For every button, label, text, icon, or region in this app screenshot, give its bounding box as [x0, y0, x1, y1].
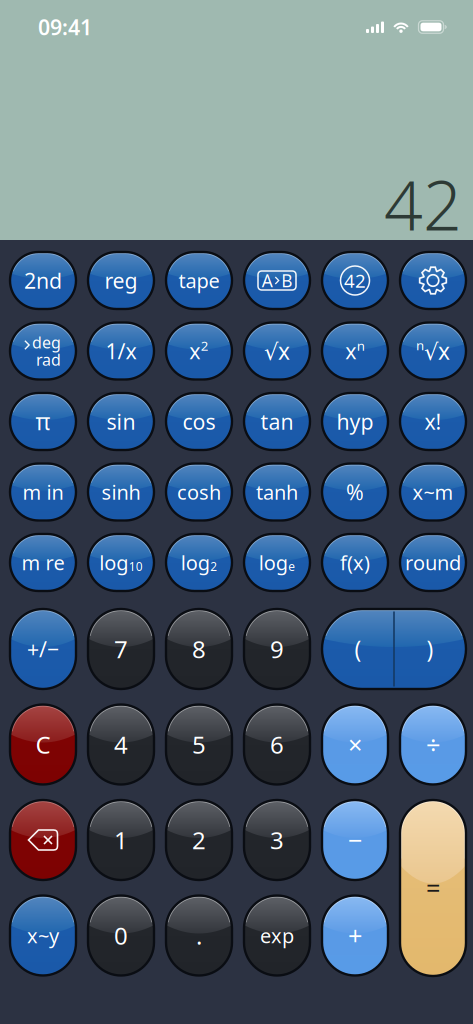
- button[interactable]: −: [322, 800, 388, 880]
- staticText: 6: [270, 729, 284, 760]
- staticText: +/−: [27, 635, 59, 663]
- staticText: cos: [182, 407, 215, 436]
- staticText: 2: [192, 824, 206, 856]
- button[interactable]: x2: [166, 322, 232, 379]
- staticText: 2: [201, 337, 209, 354]
- staticText: 9: [270, 633, 284, 665]
- button[interactable]: 8: [166, 609, 232, 689]
- staticText: (: [354, 634, 361, 664]
- button[interactable]: π: [10, 393, 76, 450]
- staticText: 2nd: [24, 266, 62, 295]
- staticText: B: [281, 269, 292, 292]
- button[interactable]: %: [322, 463, 388, 520]
- button[interactable]: Settings: [400, 252, 466, 309]
- button[interactable]: .: [166, 895, 232, 975]
- button[interactable]: ÷: [400, 704, 466, 784]
- staticText: 2: [210, 558, 217, 574]
- button[interactable]: √x: [244, 322, 310, 379]
- button[interactable]: exp: [244, 895, 310, 975]
- button[interactable]: hyp: [322, 393, 388, 450]
- button[interactable]: 3: [244, 800, 310, 880]
- button[interactable]: 9: [244, 609, 310, 689]
- button[interactable]: 1/x: [88, 322, 154, 379]
- staticText: 8: [192, 633, 206, 665]
- staticText: exp: [260, 922, 294, 949]
- button[interactable]: ×: [322, 704, 388, 784]
- staticText: log: [99, 549, 128, 576]
- button[interactable]: 4: [88, 704, 154, 784]
- button[interactable]: 1: [88, 800, 154, 880]
- button[interactable]: +/−: [10, 609, 76, 689]
- staticText: .: [196, 920, 202, 951]
- button[interactable]: round: [400, 534, 466, 591]
- button[interactable]: 6: [244, 704, 310, 784]
- button[interactable]: cosh: [166, 463, 232, 520]
- staticText: π: [35, 406, 50, 436]
- staticText: x~y: [27, 922, 59, 949]
- staticText: 4: [114, 729, 128, 760]
- staticText: 7: [114, 633, 128, 665]
- staticText: A: [262, 269, 273, 292]
- staticText: +: [348, 919, 362, 952]
- staticText: m in: [22, 479, 63, 505]
- button[interactable]: m re: [10, 534, 76, 591]
- staticText: ): [426, 634, 433, 664]
- button[interactable]: 0: [88, 895, 154, 975]
- button[interactable]: x!: [400, 393, 466, 450]
- button[interactable]: Degrees or radians: [10, 322, 76, 379]
- staticText: 0: [114, 920, 128, 951]
- staticText: 42: [344, 268, 366, 293]
- staticText: e: [288, 558, 295, 574]
- staticText: tan: [260, 407, 293, 436]
- button[interactable]: tanh: [244, 463, 310, 520]
- button[interactable]: x~m: [400, 463, 466, 520]
- staticText: ÷: [426, 728, 440, 761]
- button[interactable]: =: [400, 800, 466, 976]
- button[interactable]: Answer 42: [322, 252, 388, 309]
- staticText: 1/x: [105, 337, 136, 365]
- button[interactable]: 2: [166, 800, 232, 880]
- button[interactable]: cos: [166, 393, 232, 450]
- button[interactable]: 5: [166, 704, 232, 784]
- staticText: reg: [104, 266, 137, 295]
- button[interactable]: C: [10, 704, 76, 784]
- button[interactable]: sinh: [88, 463, 154, 520]
- staticText: =: [426, 871, 440, 905]
- staticText: −: [348, 823, 362, 857]
- staticText: x~m: [412, 479, 453, 505]
- staticText: deg: [32, 332, 61, 353]
- button[interactable]: nth root of x: [400, 322, 466, 379]
- button[interactable]: tan: [244, 393, 310, 450]
- staticText: n: [416, 336, 424, 354]
- button[interactable]: m in: [10, 463, 76, 520]
- button[interactable]: x~y: [10, 895, 76, 975]
- staticText: C: [35, 729, 50, 760]
- staticText: m re: [21, 549, 64, 576]
- button[interactable]: reg: [88, 252, 154, 309]
- staticText: x: [345, 337, 356, 365]
- button[interactable]: 2nd: [10, 252, 76, 309]
- button[interactable]: loge: [244, 534, 310, 591]
- staticText: 3: [270, 824, 284, 856]
- button[interactable]: xn: [322, 322, 388, 379]
- staticText: rad: [36, 349, 61, 370]
- staticText: round: [405, 549, 461, 576]
- staticText: 42: [384, 159, 462, 249]
- staticText: 1: [114, 824, 128, 856]
- staticText: hyp: [336, 407, 373, 436]
- button[interactable]: Convert A to B: [244, 252, 310, 309]
- button[interactable]: f(x): [322, 534, 388, 591]
- staticText: cosh: [177, 479, 221, 505]
- button[interactable]: parentheses: [322, 609, 466, 689]
- button[interactable]: log10: [88, 534, 154, 591]
- button[interactable]: +: [322, 895, 388, 975]
- staticText: log: [181, 549, 210, 576]
- staticText: tanh: [256, 479, 298, 505]
- staticText: sin: [106, 407, 135, 436]
- button[interactable]: tape: [166, 252, 232, 309]
- button[interactable]: 7: [88, 609, 154, 689]
- button[interactable]: sin: [88, 393, 154, 450]
- button[interactable]: log2: [166, 534, 232, 591]
- staticText: √x: [264, 336, 290, 366]
- button[interactable]: Delete: [10, 800, 76, 880]
